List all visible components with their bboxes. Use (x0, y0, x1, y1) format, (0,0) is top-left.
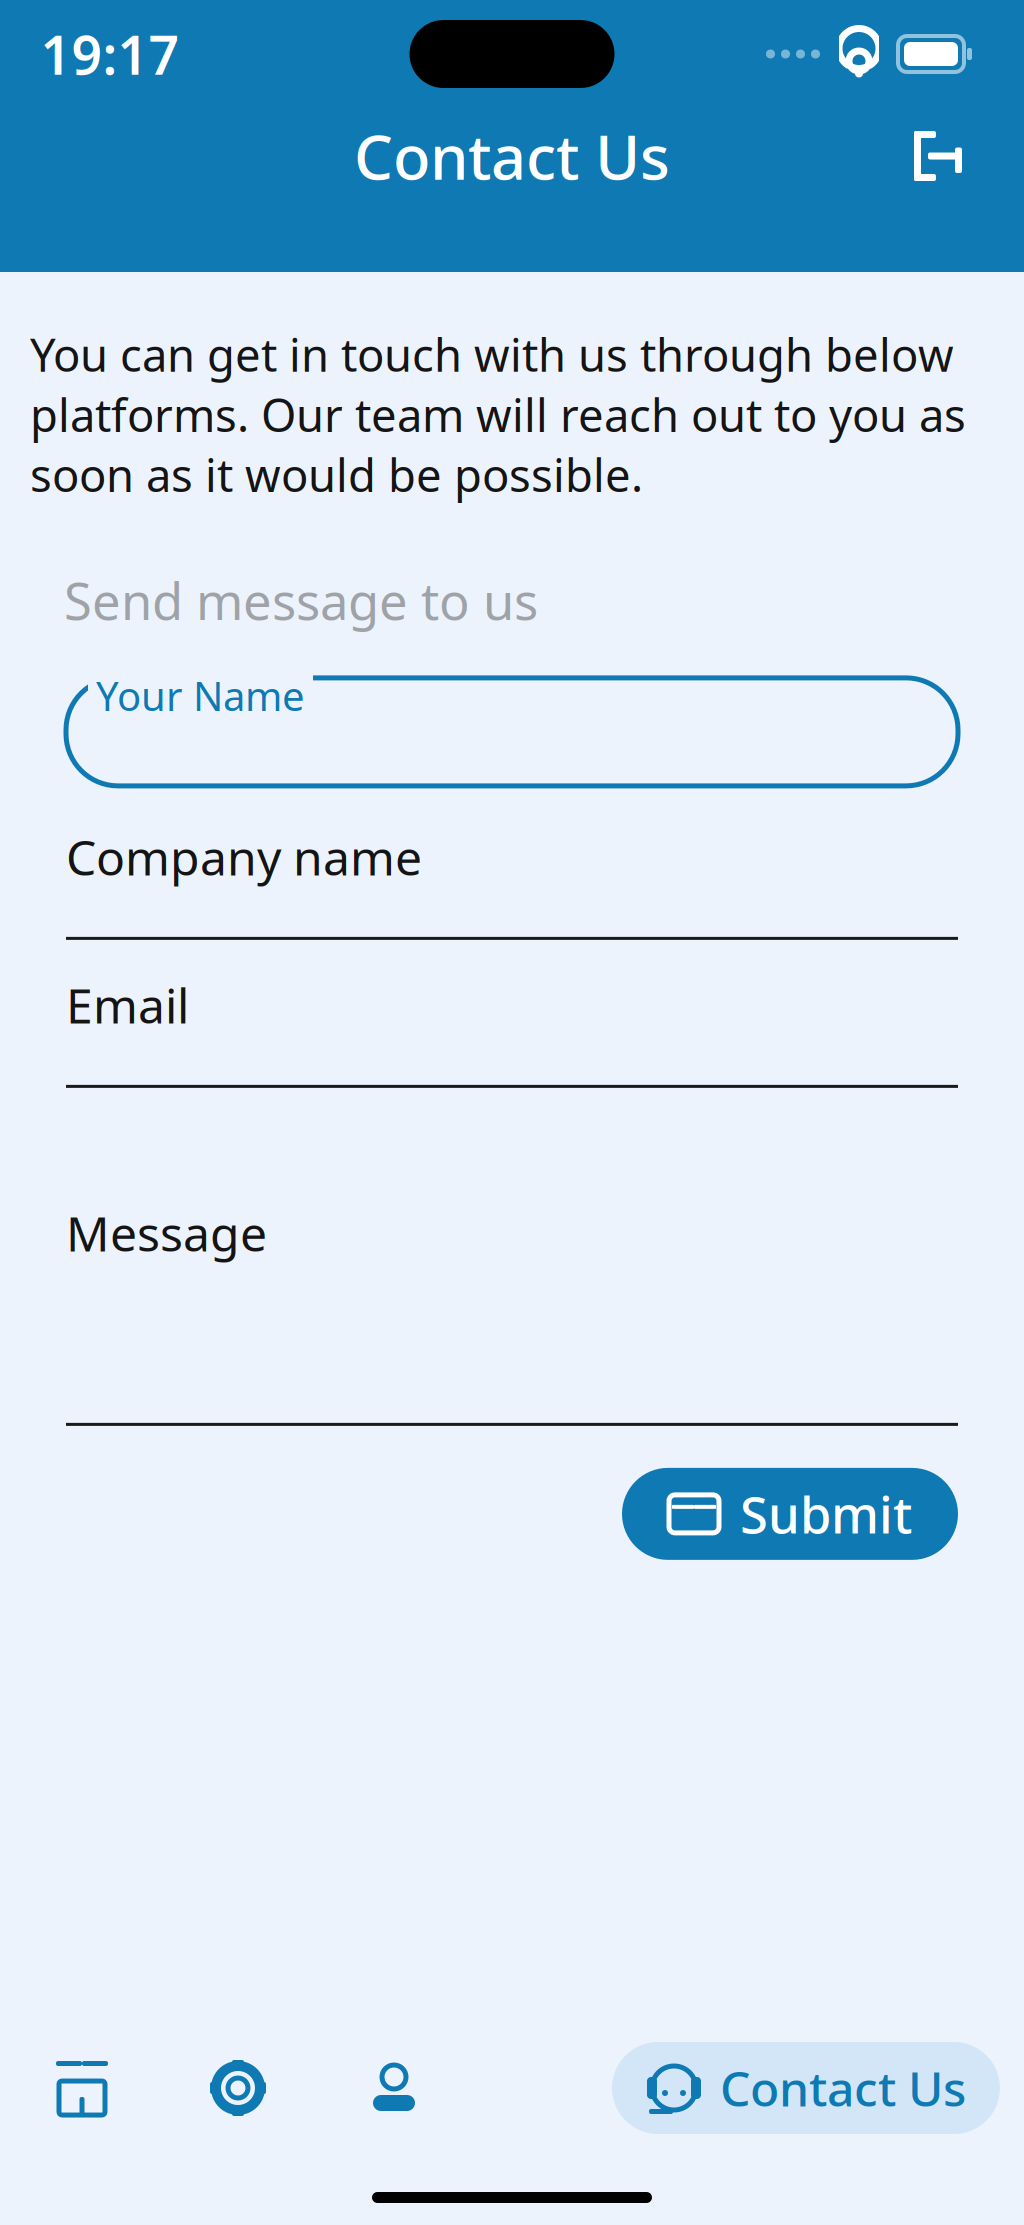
button[interactable]: Settings (160, 2028, 316, 2148)
staticText: Company name (66, 825, 422, 889)
staticText: Contact Us (354, 115, 670, 197)
button[interactable]: Profile (316, 2028, 472, 2148)
staticText: Message (66, 1201, 267, 1265)
button[interactable]: Company name (66, 830, 958, 940)
staticText: Send message to us (64, 567, 538, 634)
button[interactable]: Submit (622, 1468, 958, 1560)
staticText: Contact Us (720, 2056, 966, 2120)
button[interactable]: Log out (894, 117, 986, 195)
button[interactable]: Contact Us (612, 2042, 1000, 2134)
staticText: Your Name (96, 669, 305, 722)
button[interactable]: Your Name (66, 678, 958, 786)
button[interactable]: Message (66, 1206, 958, 1426)
button[interactable]: Email (66, 978, 958, 1088)
staticText: Email (66, 973, 189, 1037)
staticText: 19:17 (40, 19, 179, 89)
staticText: Submit (740, 1480, 912, 1547)
staticText: You can get in touch with us through bel… (30, 324, 966, 505)
button[interactable]: Home (4, 2028, 160, 2148)
